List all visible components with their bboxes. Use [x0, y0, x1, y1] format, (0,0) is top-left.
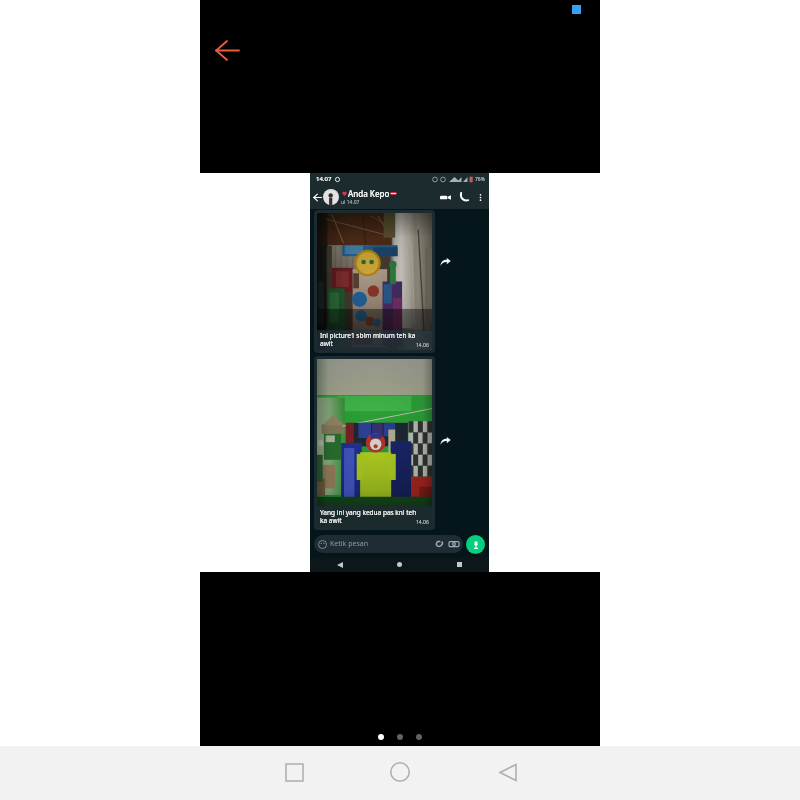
button[interactable]: Page 1: [378, 734, 384, 740]
button[interactable]: Back: [488, 752, 528, 792]
staticText: ul 14.07: [341, 199, 360, 206]
button[interactable]: Recents: [429, 557, 489, 572]
button[interactable]: Home: [380, 752, 420, 792]
button[interactable]: Back: [208, 33, 243, 68]
staticText: 76%: [475, 176, 485, 183]
button[interactable]: Forward: [440, 256, 451, 267]
button[interactable]: Video call: [440, 192, 451, 203]
button[interactable]: Page 3: [416, 734, 422, 740]
button[interactable]: Ini picture1 sblm minum teh ka awit: [314, 210, 435, 353]
button[interactable]: Voice call: [459, 192, 469, 202]
button[interactable]: Profile photo: [323, 189, 339, 205]
button[interactable]: Forward: [440, 435, 451, 446]
staticText: 14.06: [416, 519, 429, 526]
button[interactable]: Yang ini yang kedua pas knl teh ka awit: [314, 356, 435, 530]
staticText: Ini picture1 sblm minum teh ka awit: [320, 331, 416, 348]
staticText: Anda Kepo: [348, 188, 390, 199]
button[interactable]: Recents: [274, 752, 314, 792]
button[interactable]: Back: [313, 193, 322, 202]
button[interactable]: More options: [477, 194, 484, 201]
staticText: 14.07: [316, 175, 332, 183]
button[interactable]: Ketik pesan: [314, 535, 463, 553]
button[interactable]: Back: [310, 557, 369, 572]
staticText: Yang ini yang kedua pas knl teh ka awit: [320, 508, 417, 525]
staticText: Ketik pesan: [330, 539, 369, 549]
button[interactable]: Page 2: [397, 734, 403, 740]
button[interactable]: Voice message: [466, 535, 485, 554]
button[interactable]: Home: [369, 557, 429, 572]
staticText: 14.06: [416, 342, 429, 349]
